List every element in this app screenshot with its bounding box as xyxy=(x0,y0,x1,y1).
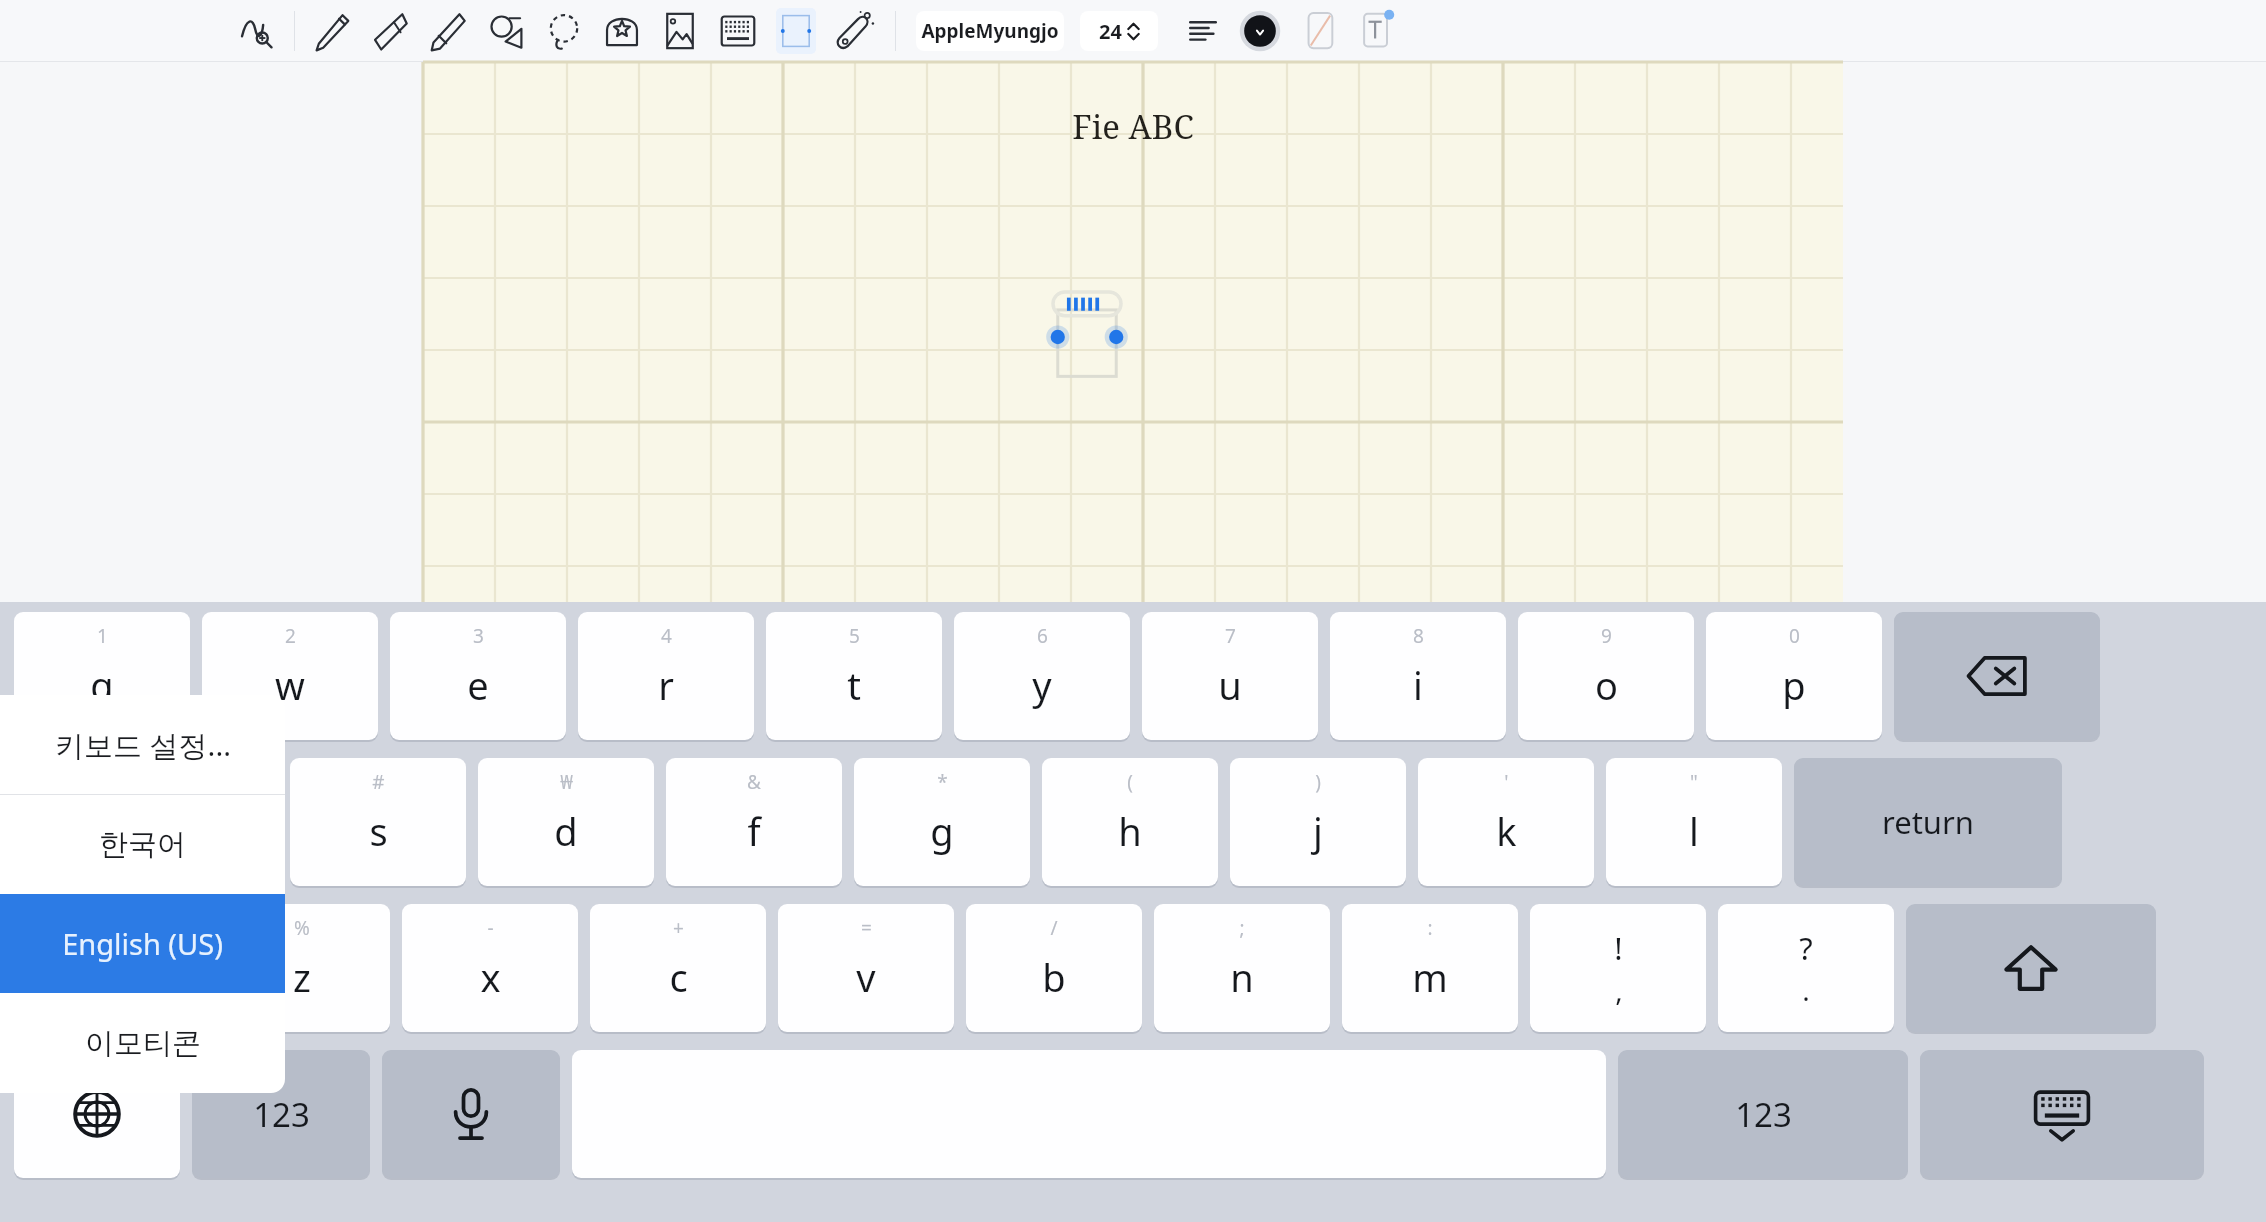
staticText: " xyxy=(1690,769,1698,795)
button[interactable]: Fill colour xyxy=(1292,0,1348,62)
staticText: 123 xyxy=(1735,1092,1792,1137)
button[interactable]: - xyxy=(402,904,578,1032)
staticText: - xyxy=(487,915,494,941)
staticText: t xyxy=(847,659,861,711)
button[interactable]: 7 xyxy=(1142,612,1318,740)
button[interactable]: AppleMyungjo xyxy=(916,11,1064,51)
staticText: ₩ xyxy=(560,769,573,795)
button[interactable]: Voice input xyxy=(382,1050,560,1178)
button[interactable]: 2 xyxy=(202,612,378,740)
staticText: 0 xyxy=(1789,623,1800,649)
button[interactable]: Shapes xyxy=(477,0,535,62)
button[interactable]: Keyboard xyxy=(709,0,767,62)
button[interactable]: Hide keyboard xyxy=(1920,1050,2204,1178)
button[interactable]: % xyxy=(214,904,390,1032)
button[interactable]: 0 xyxy=(1706,612,1882,740)
button[interactable]: ₩ xyxy=(478,758,654,886)
staticText: # xyxy=(372,769,385,795)
staticText: 123 xyxy=(253,1092,310,1137)
button[interactable]: 3 xyxy=(390,612,566,740)
button[interactable]: Backspace xyxy=(1894,612,2100,740)
button[interactable]: 8 xyxy=(1330,612,1506,740)
staticText: q xyxy=(90,659,114,711)
staticText: : xyxy=(1427,915,1433,941)
staticText: 3 xyxy=(473,623,484,649)
staticText: 키보드 설정... xyxy=(55,725,231,765)
button[interactable]: " xyxy=(1606,758,1782,886)
staticText: 6 xyxy=(1037,623,1048,649)
button[interactable]: Pen xyxy=(303,0,361,62)
button[interactable]: 1 xyxy=(14,612,190,740)
staticText: 7 xyxy=(1225,623,1236,649)
staticText: l xyxy=(1689,805,1699,857)
staticText: ! xyxy=(1614,927,1623,969)
button[interactable]: 5 xyxy=(766,612,942,740)
button[interactable]: Text colour xyxy=(1234,5,1286,57)
button[interactable]: / xyxy=(966,904,1142,1032)
button[interactable]: 한국어 xyxy=(0,795,285,894)
button[interactable]: 이모티콘 xyxy=(0,993,285,1093)
staticText: z xyxy=(293,951,311,1003)
staticText: ? xyxy=(1799,927,1813,969)
staticText: ' xyxy=(1504,769,1509,795)
button[interactable]: Change keyboard xyxy=(14,1050,180,1178)
button[interactable]: Image xyxy=(651,0,709,62)
staticText: ( xyxy=(1127,769,1133,795)
staticText: e xyxy=(467,659,489,711)
button[interactable]: : xyxy=(1342,904,1518,1032)
button[interactable]: Text style xyxy=(1348,0,1404,62)
staticText: * xyxy=(937,769,948,795)
button[interactable]: * xyxy=(854,758,1030,886)
button[interactable]: Selected text box xyxy=(1053,296,1121,378)
button[interactable]: 24 xyxy=(1080,11,1158,51)
button[interactable]: 4 xyxy=(578,612,754,740)
button[interactable]: 키보드 설정... xyxy=(0,695,285,794)
staticText: 5 xyxy=(849,623,860,649)
button[interactable]: Sticker xyxy=(593,0,651,62)
button[interactable]: # xyxy=(290,758,466,886)
staticText: 4 xyxy=(661,623,672,649)
button[interactable]: 6 xyxy=(954,612,1130,740)
button[interactable]: Zoom select xyxy=(228,0,286,62)
staticText: AppleMyungjo xyxy=(921,18,1059,44)
staticText: r xyxy=(658,659,674,711)
button[interactable]: + xyxy=(590,904,766,1032)
staticText: + xyxy=(673,915,684,941)
button[interactable]: 9 xyxy=(1518,612,1694,740)
staticText: 9 xyxy=(1601,623,1612,649)
button[interactable]: 123 xyxy=(192,1050,370,1178)
staticText: 24 xyxy=(1099,18,1122,45)
button[interactable]: ' xyxy=(1418,758,1594,886)
staticText: d xyxy=(554,805,578,857)
staticText: a xyxy=(179,805,201,857)
button[interactable]: Lasso xyxy=(535,0,593,62)
button[interactable]: Eraser xyxy=(361,0,419,62)
button[interactable]: ( xyxy=(1042,758,1218,886)
button[interactable]: Marker xyxy=(419,0,477,62)
staticText: % xyxy=(294,915,310,941)
button[interactable]: ? xyxy=(1718,904,1894,1032)
staticText: ) xyxy=(1315,769,1321,795)
staticText: b xyxy=(1042,951,1066,1003)
button[interactable]: Align left xyxy=(1178,0,1228,62)
button[interactable]: a xyxy=(102,758,278,886)
button[interactable]: & xyxy=(666,758,842,886)
staticText: return xyxy=(1882,801,1974,843)
button[interactable]: ) xyxy=(1230,758,1406,886)
staticText: Fie ABC xyxy=(1072,104,1194,149)
button[interactable]: Magic xyxy=(825,0,883,62)
button[interactable]: = xyxy=(778,904,954,1032)
staticText: x xyxy=(480,951,501,1003)
button[interactable]: Text xyxy=(767,0,825,62)
button[interactable]: ; xyxy=(1154,904,1330,1032)
staticText: m xyxy=(1412,951,1448,1003)
staticText: 8 xyxy=(1413,623,1424,649)
staticText: & xyxy=(747,769,761,795)
button[interactable]: ! xyxy=(1530,904,1706,1032)
button[interactable]: return xyxy=(1794,758,2062,886)
button[interactable]: Shift xyxy=(1906,904,2156,1032)
button[interactable]: English (US) xyxy=(0,894,285,993)
staticText: n xyxy=(1230,951,1254,1003)
button[interactable]: 123 xyxy=(1618,1050,1908,1178)
